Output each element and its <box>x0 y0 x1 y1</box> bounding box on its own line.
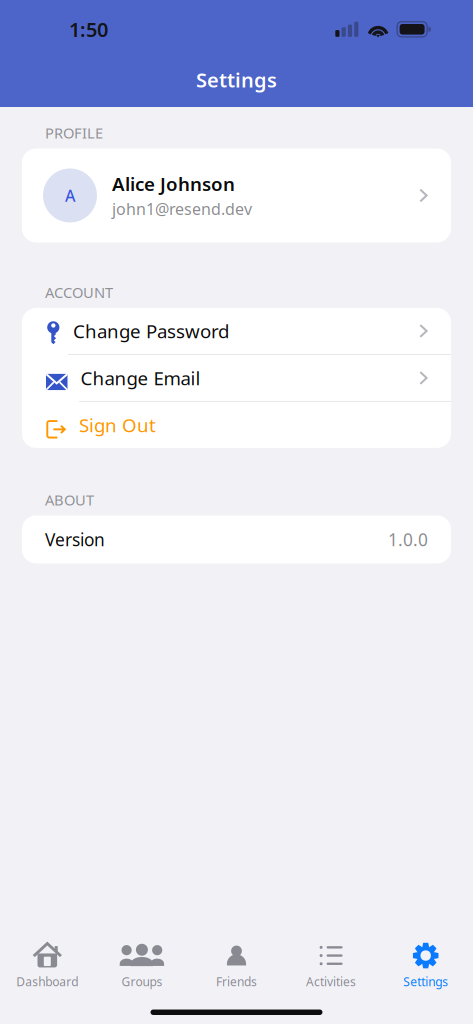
staticText: Settings <box>403 974 448 989</box>
staticText: Friends <box>216 974 257 989</box>
staticText: 1:50 <box>69 16 108 43</box>
staticText: Alice Johnson <box>112 171 235 196</box>
staticText: Change Password <box>73 319 229 343</box>
button[interactable]: Groups <box>95 934 189 995</box>
staticText: Dashboard <box>16 974 78 989</box>
staticText: john1@resend.dev <box>112 198 252 219</box>
button[interactable]: Activities <box>284 934 378 995</box>
staticText: PROFILE <box>45 123 103 142</box>
staticText: Groups <box>121 974 162 989</box>
button[interactable]: A <box>22 148 451 242</box>
button[interactable]: Sign Out <box>22 402 451 448</box>
staticText: Version <box>45 528 105 551</box>
button[interactable]: Settings <box>378 934 473 995</box>
button[interactable]: Friends <box>189 934 284 995</box>
button[interactable]: Change Email <box>22 355 451 401</box>
staticText: A <box>65 185 75 206</box>
button[interactable]: Dashboard <box>0 934 95 995</box>
staticText: ACCOUNT <box>45 282 113 302</box>
staticText: Settings <box>196 66 277 93</box>
staticText: ABOUT <box>45 490 94 509</box>
staticText: Sign Out <box>79 413 156 437</box>
staticText: Change Email <box>80 366 200 390</box>
staticText: 1.0.0 <box>388 528 428 551</box>
button[interactable]: Change Password <box>22 308 451 354</box>
staticText: Activities <box>306 974 356 989</box>
